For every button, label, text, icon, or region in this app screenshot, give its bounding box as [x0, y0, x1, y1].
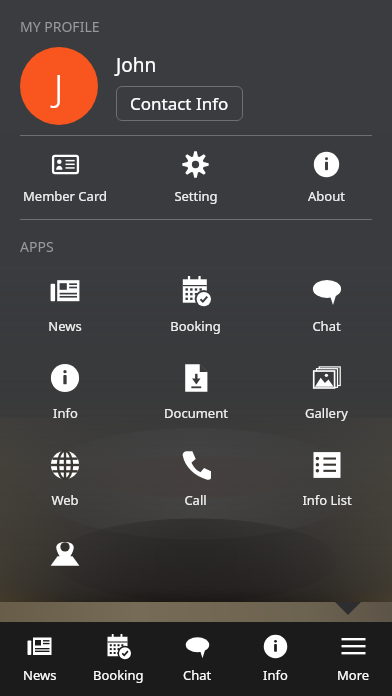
button[interactable]: News: [0, 273, 130, 338]
button[interactable]: Info: [236, 622, 314, 696]
staticText: Gallery: [305, 404, 348, 422]
button[interactable]: Call: [130, 447, 261, 512]
staticText: Booking: [170, 317, 221, 335]
button[interactable]: Location: [47, 534, 83, 570]
button[interactable]: Chat: [158, 622, 236, 696]
staticText: Document: [164, 404, 228, 422]
button[interactable]: Booking: [79, 622, 158, 696]
button[interactable]: Web: [0, 447, 130, 512]
staticText: Call: [184, 491, 207, 509]
button[interactable]: About: [261, 148, 392, 208]
staticText: Info: [263, 666, 288, 684]
button[interactable]: Document: [130, 360, 261, 425]
staticText: Booking: [93, 666, 144, 684]
button[interactable]: Member Card: [0, 148, 130, 208]
staticText: About: [308, 187, 345, 205]
staticText: Contact Info: [130, 92, 229, 115]
button[interactable]: Info List: [261, 447, 392, 512]
button[interactable]: Info: [0, 360, 130, 425]
button[interactable]: Contact Info: [116, 86, 243, 121]
button[interactable]: Setting: [130, 148, 261, 208]
staticText: Info: [53, 404, 78, 422]
staticText: APPS: [20, 237, 54, 256]
staticText: Chat: [312, 317, 341, 335]
staticText: News: [48, 317, 82, 335]
staticText: MY PROFILE: [20, 17, 100, 36]
button[interactable]: More: [314, 622, 392, 696]
staticText: J: [54, 61, 64, 111]
staticText: More: [337, 666, 370, 684]
button[interactable]: Booking: [130, 273, 261, 338]
button[interactable]: Gallery: [261, 360, 392, 425]
staticText: John: [116, 52, 157, 78]
staticText: Chat: [183, 666, 212, 684]
staticText: Web: [51, 491, 79, 509]
staticText: Info List: [302, 491, 352, 509]
staticText: News: [23, 666, 57, 684]
button[interactable]: J: [20, 47, 98, 125]
staticText: Setting: [174, 187, 218, 205]
button[interactable]: News: [0, 622, 79, 696]
staticText: Member Card: [23, 187, 107, 205]
button[interactable]: Chat: [261, 273, 392, 338]
